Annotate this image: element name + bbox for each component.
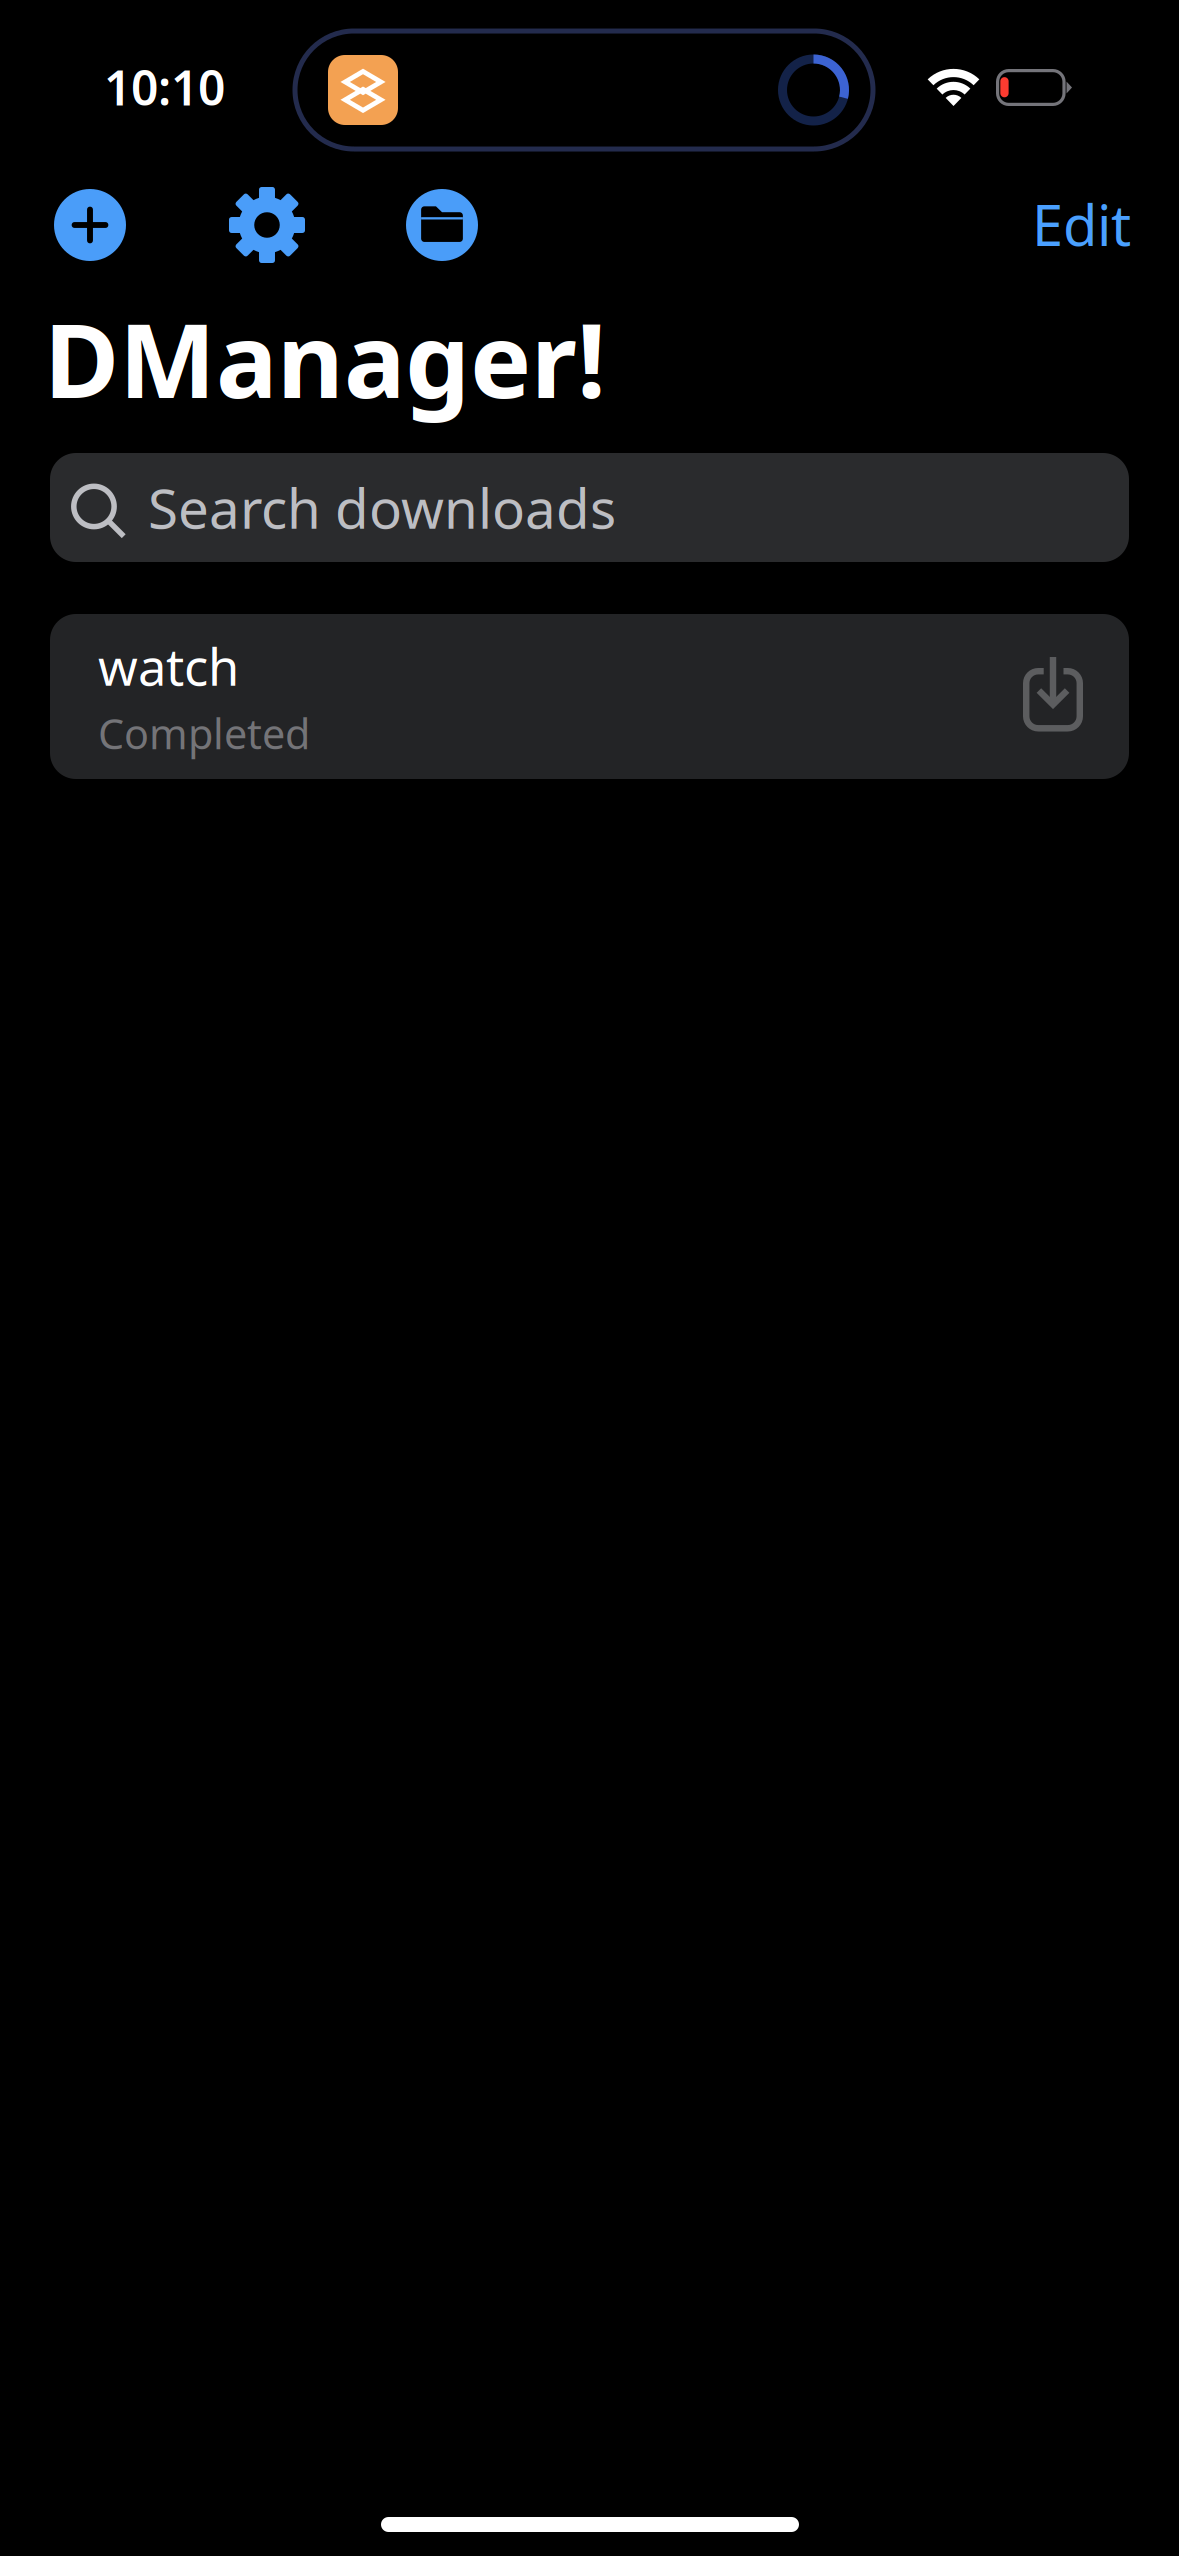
staticText: watch (98, 632, 239, 700)
button[interactable]: Edit (1018, 177, 1145, 271)
staticText: Edit (1032, 187, 1131, 261)
staticText: Completed (98, 706, 310, 761)
staticText: Search downloads (148, 471, 616, 544)
button[interactable]: Search downloads (50, 453, 1129, 562)
button[interactable]: watch (50, 614, 1129, 779)
button[interactable]: Add download (54, 189, 126, 261)
staticText: 10:10 (104, 55, 225, 119)
staticText: DManager! (44, 290, 606, 426)
button[interactable]: Browse files (406, 189, 478, 261)
button[interactable]: Settings (229, 187, 305, 263)
